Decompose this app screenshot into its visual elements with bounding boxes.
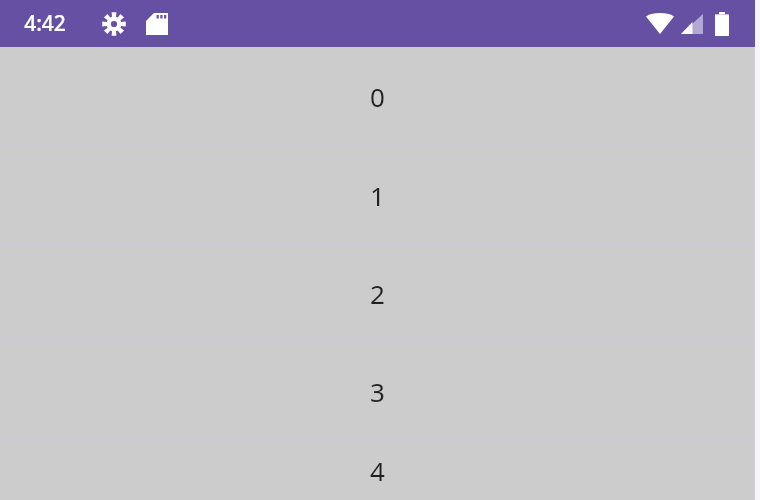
other: Cellular signal	[679, 12, 705, 36]
staticText: 1	[370, 178, 385, 213]
button[interactable]: 3	[0, 341, 755, 439]
staticText: 4	[370, 453, 385, 488]
button[interactable]: 2	[0, 243, 755, 341]
staticText: 2	[370, 276, 385, 311]
other: SD card	[143, 10, 171, 38]
button[interactable]: 4	[0, 439, 755, 500]
other: Battery	[711, 11, 733, 37]
staticText: 3	[370, 374, 385, 409]
button[interactable]: 1	[0, 145, 755, 243]
other: Settings	[100, 10, 128, 38]
other: Wi-Fi	[645, 12, 675, 36]
staticText: 4:42	[24, 9, 66, 38]
staticText: 0	[370, 79, 385, 114]
button[interactable]: 0	[0, 47, 755, 145]
